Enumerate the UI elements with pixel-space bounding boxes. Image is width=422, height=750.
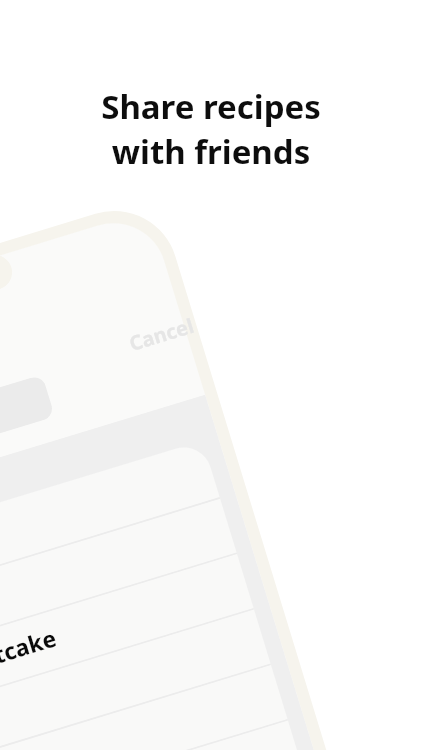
staticText: Cancel [126,312,198,357]
staticText: tcake [0,621,60,669]
staticText: Share recipes with friends [0,84,422,173]
button[interactable]: Cancel [126,307,210,357]
